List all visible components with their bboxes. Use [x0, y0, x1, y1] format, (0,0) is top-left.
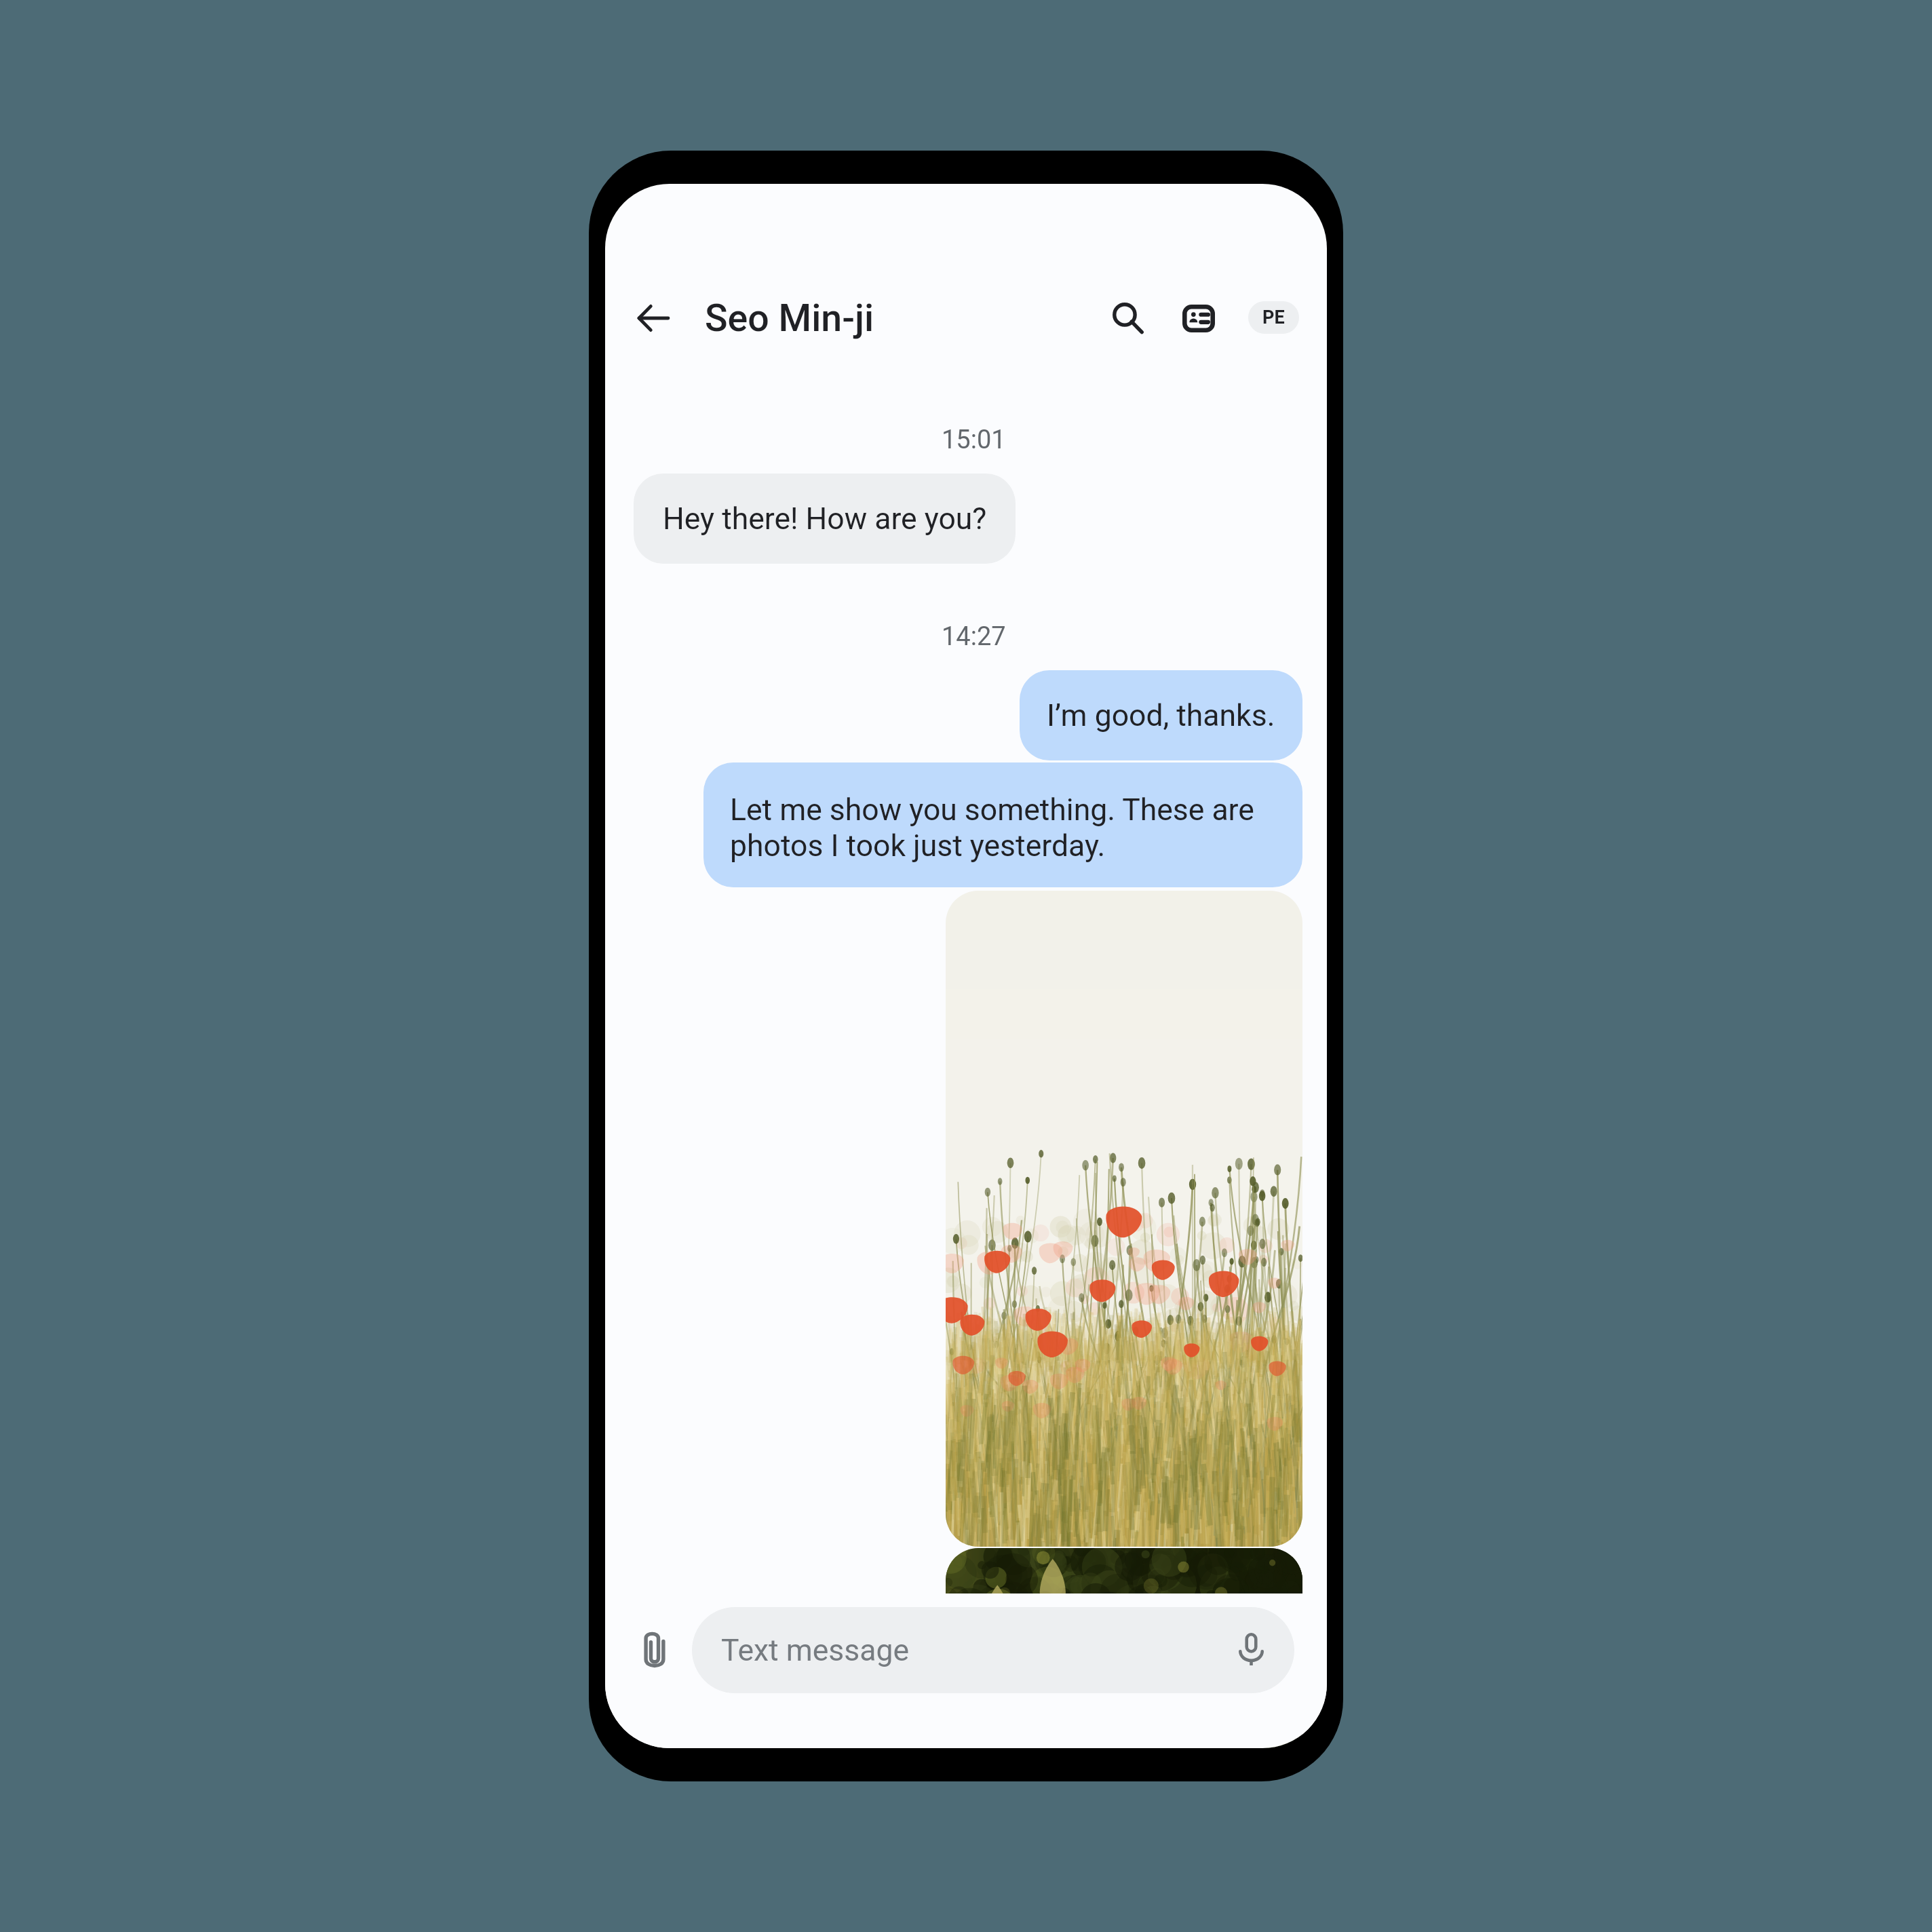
button[interactable]: Contact details [1170, 290, 1227, 347]
staticText: PE [1262, 307, 1285, 328]
button[interactable]: Search [1100, 290, 1157, 347]
staticText: 15:01 [942, 425, 1006, 455]
button[interactable]: Photo of leaves [946, 1548, 1302, 1748]
staticText: Hey there! How are you? [663, 501, 987, 537]
button[interactable]: Back [625, 290, 681, 346]
button[interactable]: PE [1248, 301, 1299, 334]
staticText: Seo Min-ji [705, 296, 874, 341]
staticText: I’m good, thanks. [1047, 698, 1275, 733]
button[interactable]: I’m good, thanks. [1020, 670, 1302, 760]
button[interactable]: Let me show you something. These are pho… [703, 762, 1302, 887]
button[interactable]: Voice input [1222, 1620, 1280, 1678]
button[interactable]: Photo of a poppy field [946, 891, 1302, 1547]
staticText: Let me show you something. These are pho… [730, 792, 1277, 863]
button[interactable]: Attach file [625, 1621, 684, 1680]
staticText: 14:27 [942, 621, 1006, 652]
button[interactable]: Hey there! How are you? [634, 474, 1016, 564]
button[interactable]: Text message [692, 1607, 1294, 1693]
staticText: Text message [721, 1633, 910, 1668]
